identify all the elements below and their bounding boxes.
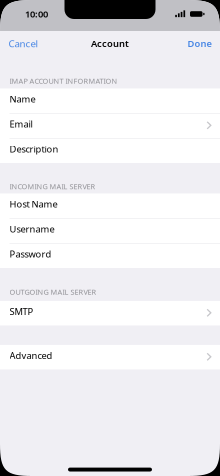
button[interactable]: Host Name <box>0 193 220 218</box>
staticText: OUTGOING MAIL SERVER <box>9 287 96 297</box>
button[interactable]: Email <box>0 113 220 138</box>
staticText: Description <box>9 143 58 155</box>
staticText: INCOMING MAIL SERVER <box>9 181 95 191</box>
button[interactable]: Name <box>0 88 220 113</box>
staticText: Username <box>9 223 54 235</box>
staticText: Host Name <box>9 198 57 210</box>
staticText: Advanced <box>9 349 52 362</box>
staticText: Name <box>9 93 35 105</box>
button[interactable]: Description <box>0 138 220 163</box>
staticText: 10:00 <box>25 8 48 20</box>
staticText: SMTP <box>9 305 33 318</box>
button[interactable]: SMTP <box>0 301 220 325</box>
button[interactable]: Done <box>179 31 220 56</box>
staticText: Cancel <box>8 37 38 50</box>
staticText: Password <box>9 248 51 260</box>
staticText: Done <box>187 37 211 50</box>
button[interactable]: Advanced <box>0 345 220 369</box>
button[interactable]: Username <box>0 218 220 243</box>
staticText: IMAP ACCOUNT INFORMATION <box>9 76 117 86</box>
staticText: Account <box>91 37 129 50</box>
button[interactable]: Cancel <box>0 31 46 56</box>
button[interactable]: Password <box>0 243 220 268</box>
staticText: Email <box>9 118 32 130</box>
